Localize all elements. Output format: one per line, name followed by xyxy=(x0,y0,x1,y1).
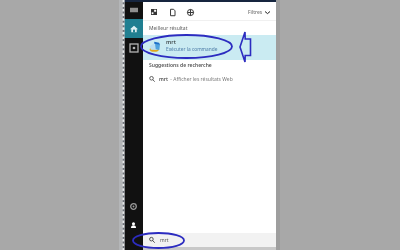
button[interactable]: mrt xyxy=(143,35,276,60)
button[interactable]: Accueil xyxy=(124,19,143,38)
button[interactable]: mrt xyxy=(143,233,276,247)
staticText: mrt xyxy=(166,38,176,45)
button[interactable]: Filtres xyxy=(246,6,272,19)
button[interactable]: Paramètres xyxy=(124,197,143,216)
staticText: Suggestions de recherche xyxy=(149,62,212,69)
button[interactable]: Tout xyxy=(147,5,161,19)
staticText: - Afficher les résultats Web xyxy=(169,76,233,83)
staticText: Exécuter la commande xyxy=(166,46,218,53)
button[interactable]: Menu xyxy=(124,0,143,19)
button[interactable]: mrt xyxy=(143,73,276,85)
staticText: Meilleur résultat xyxy=(149,25,188,32)
button[interactable]: Web xyxy=(183,5,197,19)
staticText: mrt xyxy=(160,237,169,244)
button[interactable]: Compte xyxy=(124,216,143,235)
button[interactable]: Photos xyxy=(124,38,143,57)
staticText: Filtres xyxy=(248,9,263,16)
button[interactable]: Documents xyxy=(165,5,179,19)
staticText: mrt xyxy=(159,76,169,83)
